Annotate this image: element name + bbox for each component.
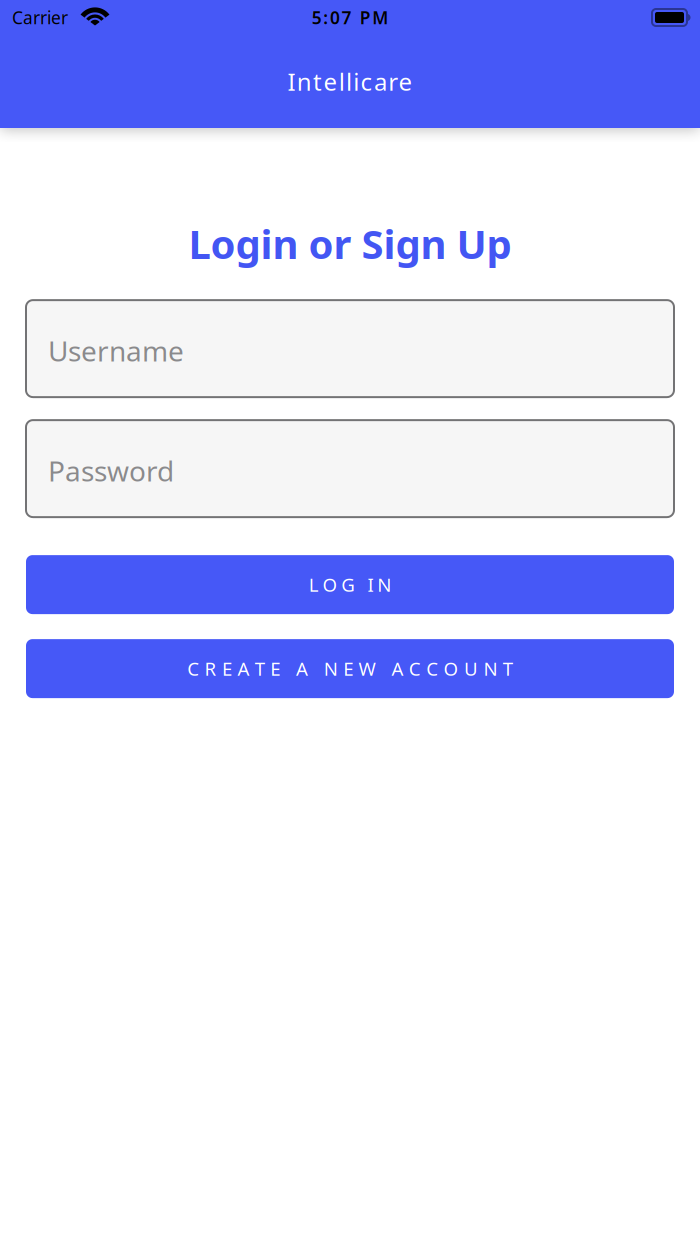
staticText: E (222, 656, 232, 681)
staticText: A (391, 656, 403, 681)
staticText: E (343, 656, 353, 681)
staticText: C (426, 656, 438, 681)
button[interactable]: C (0, 639, 700, 698)
staticText: O (444, 656, 459, 681)
staticText: C (187, 656, 199, 681)
staticText: N (483, 656, 497, 681)
staticText: O (322, 572, 337, 597)
staticText: T (255, 656, 265, 681)
button[interactable]: Username text field (0, 300, 700, 397)
staticText: 0 (330, 6, 340, 29)
staticText: N (377, 572, 391, 597)
staticText: Username (48, 332, 184, 369)
button[interactable]: L (0, 555, 700, 614)
staticText: G (341, 572, 355, 597)
staticText: A (237, 656, 249, 681)
staticText: A (296, 656, 308, 681)
staticText: : (323, 6, 328, 29)
staticText: C (409, 656, 421, 681)
staticText: W (359, 656, 376, 681)
staticText: L (309, 572, 319, 597)
staticText: Password (48, 452, 174, 489)
staticText: U (464, 656, 478, 681)
staticText: R (205, 656, 217, 681)
staticText: 5 (312, 6, 322, 29)
staticText: 7 (341, 6, 351, 29)
staticText: E (270, 656, 280, 681)
staticText: T (503, 656, 513, 681)
staticText: I (368, 572, 374, 597)
staticText: N (324, 656, 338, 681)
staticText: Login or Sign Up (188, 217, 511, 270)
staticText: Intellicare (287, 66, 412, 97)
staticText: P (360, 6, 371, 29)
button[interactable]: Password text field (0, 420, 700, 517)
staticText: M (372, 6, 388, 29)
staticText: Carrier (12, 6, 68, 29)
